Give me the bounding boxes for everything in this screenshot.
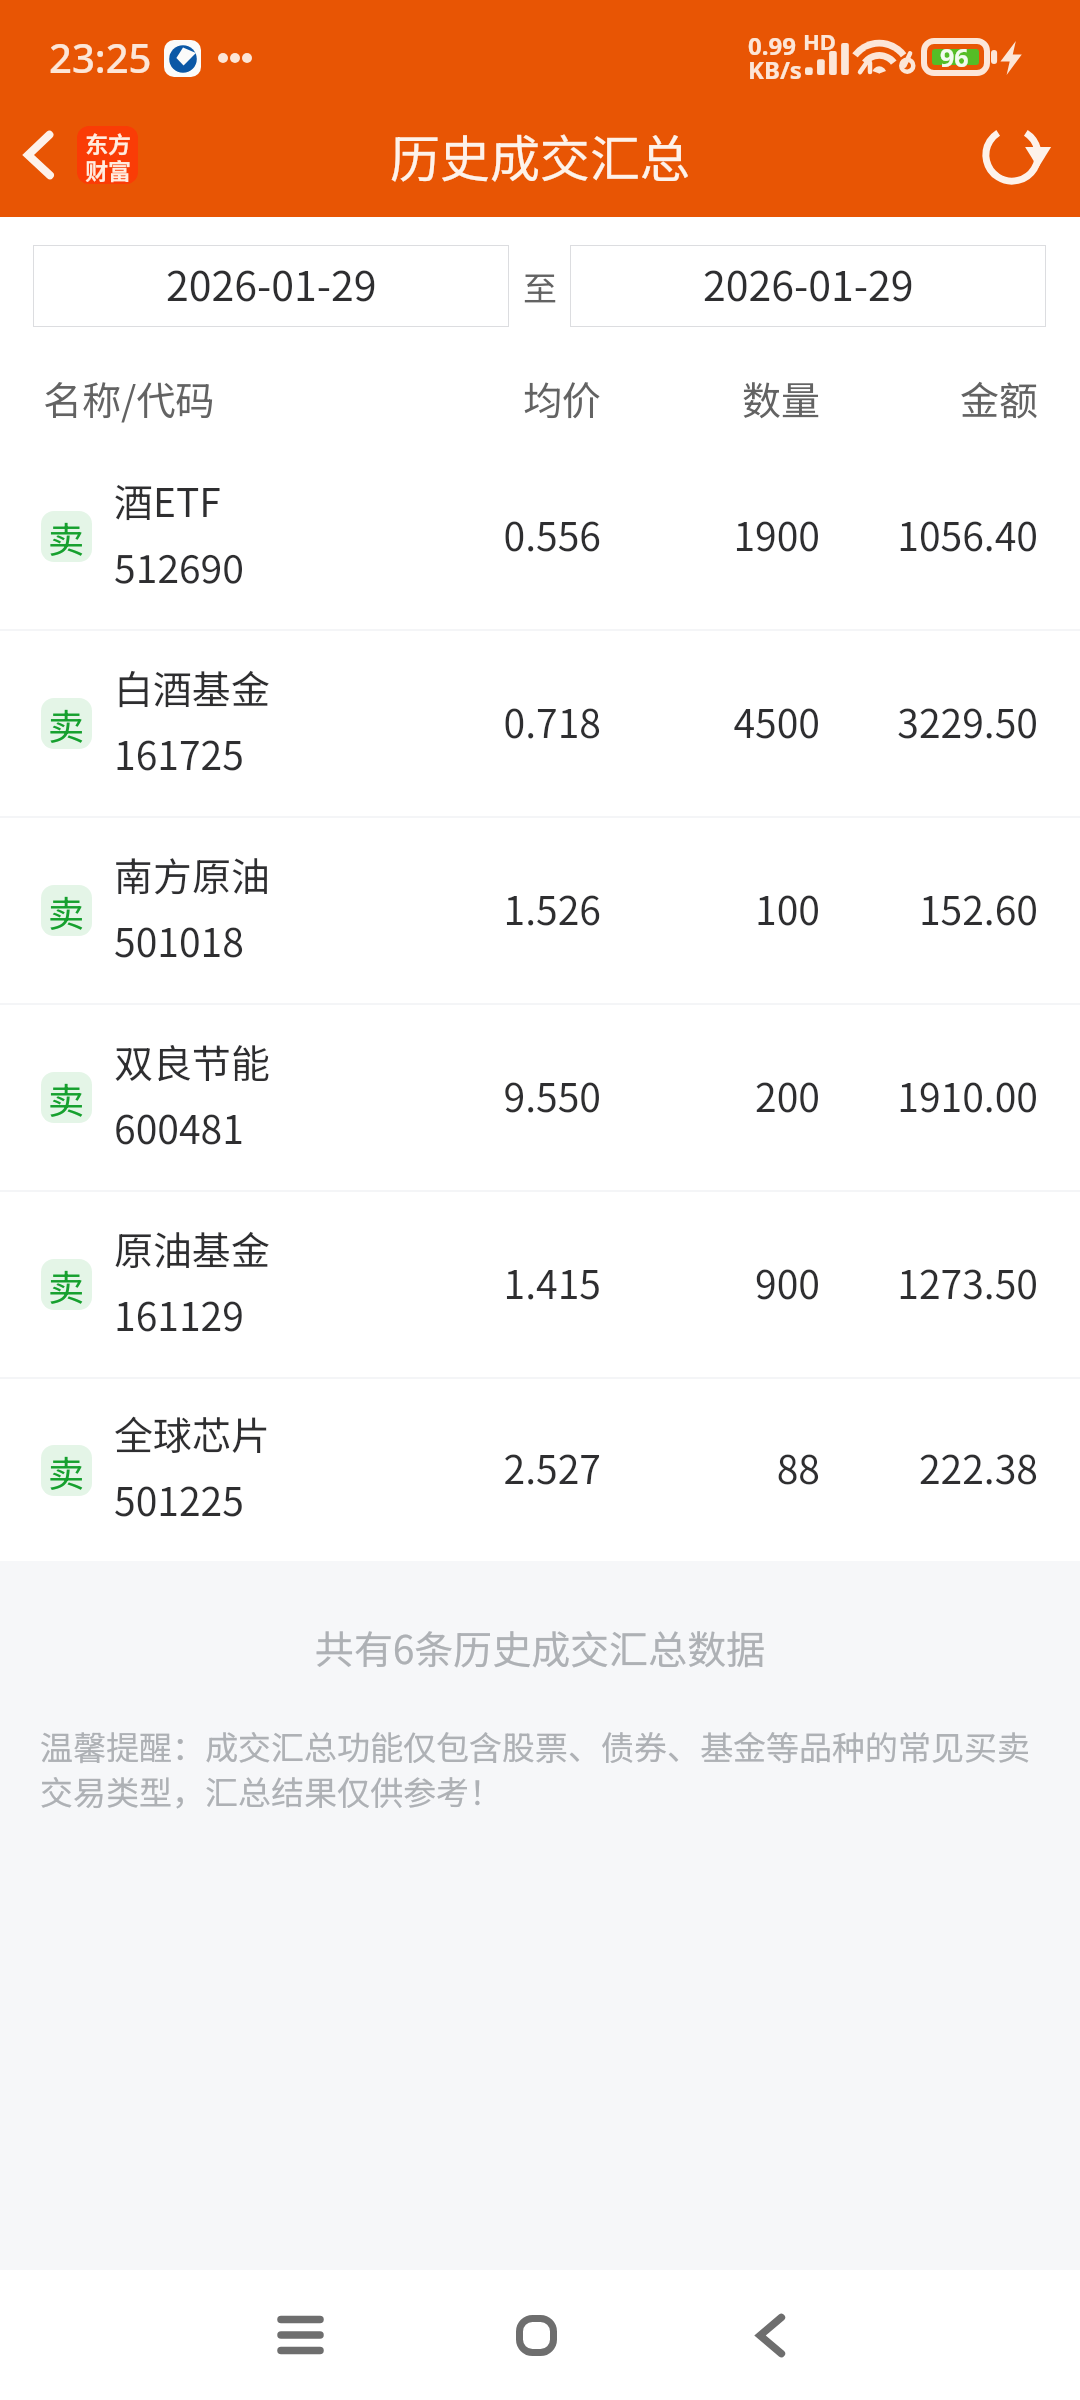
staticText: 原油基金 161129	[114, 1220, 271, 1342]
staticText: 卖	[48, 511, 85, 562]
staticText: 3229.50	[788, 693, 1038, 749]
staticText: 2026-01-29	[166, 253, 377, 312]
button[interactable]: 2026-01-29	[570, 245, 1046, 327]
staticText: 2026-01-29	[703, 253, 914, 312]
staticText: 至	[523, 262, 557, 311]
staticText: 200	[570, 1067, 820, 1123]
staticText: 均价	[401, 370, 601, 426]
staticText: 1900	[570, 506, 820, 562]
staticText: 23:25	[49, 30, 152, 84]
button[interactable]: Home	[456, 2270, 616, 2400]
staticText: 0.99 KB/s	[748, 29, 802, 86]
staticText: 0.556	[351, 506, 601, 562]
staticText: 96	[940, 40, 969, 74]
staticText: 全球芯片 501225	[114, 1405, 271, 1527]
button[interactable]: 卖	[0, 444, 1080, 629]
staticText: 100	[570, 880, 820, 936]
staticText: 2.527	[351, 1439, 601, 1495]
staticText: 温馨提醒：成交汇总功能仅包含股票、债券、基金等品种的常见买卖 交易类型，汇总结果…	[40, 1722, 1072, 1815]
button[interactable]: Back	[0, 110, 78, 200]
button[interactable]: 东方 财富	[77, 126, 138, 184]
staticText: HD	[803, 26, 836, 56]
button[interactable]: 卖	[0, 631, 1080, 816]
button[interactable]: 卖	[0, 1192, 1080, 1377]
staticText: 88	[570, 1439, 820, 1495]
staticText: 4500	[570, 693, 820, 749]
staticText: 1.415	[351, 1254, 601, 1310]
button[interactable]: 卖	[0, 1379, 1080, 1561]
staticText: 9.550	[351, 1067, 601, 1123]
staticText: 卖	[48, 698, 85, 749]
button[interactable]: 2026-01-29	[33, 245, 509, 327]
button[interactable]: Back	[691, 2270, 851, 2400]
staticText: 1910.00	[788, 1067, 1038, 1123]
staticText: 1056.40	[788, 506, 1038, 562]
staticText: 历史成交汇总	[390, 119, 690, 191]
staticText: 数量	[620, 370, 820, 426]
button[interactable]: Recent apps	[220, 2270, 380, 2400]
staticText: 卖	[48, 885, 85, 936]
staticText: 1273.50	[788, 1254, 1038, 1310]
staticText: 酒ETF 512690	[114, 472, 244, 594]
staticText: 金额	[838, 370, 1038, 426]
staticText: 222.38	[788, 1439, 1038, 1495]
staticText: 共有6条历史成交汇总数据	[0, 1619, 1080, 1675]
button[interactable]: Refresh	[971, 114, 1053, 196]
staticText: 南方原油 501018	[114, 846, 271, 968]
button[interactable]: 卖	[0, 1005, 1080, 1190]
staticText: 名称/代码	[43, 370, 215, 426]
staticText: 卖	[48, 1259, 85, 1310]
staticText: 0.718	[351, 693, 601, 749]
staticText: 卖	[48, 1072, 85, 1123]
staticText: 白酒基金 161725	[114, 659, 271, 781]
button[interactable]: 卖	[0, 818, 1080, 1003]
staticText: 1.526	[351, 880, 601, 936]
staticText: 卖	[48, 1445, 85, 1496]
staticText: 东方 财富	[85, 126, 131, 184]
staticText: 900	[570, 1254, 820, 1310]
staticText: 双良节能 600481	[114, 1033, 271, 1155]
staticText: 152.60	[788, 880, 1038, 936]
